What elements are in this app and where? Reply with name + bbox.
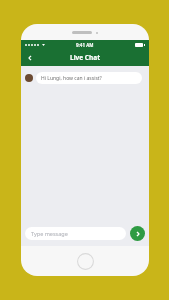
button[interactable]: Type message [25,227,126,240]
button[interactable]: Hi Lungi, how can i assist? [36,72,142,84]
button[interactable]: Back [23,51,36,64]
other: Agent avatar [25,74,33,82]
staticText: Live Chat [70,53,100,62]
button[interactable]: Send [130,226,145,241]
staticText: 9:41 AM [76,42,94,48]
staticText: Hi Lungi, how can i assist? [41,75,102,82]
staticText: Type message [31,230,68,237]
